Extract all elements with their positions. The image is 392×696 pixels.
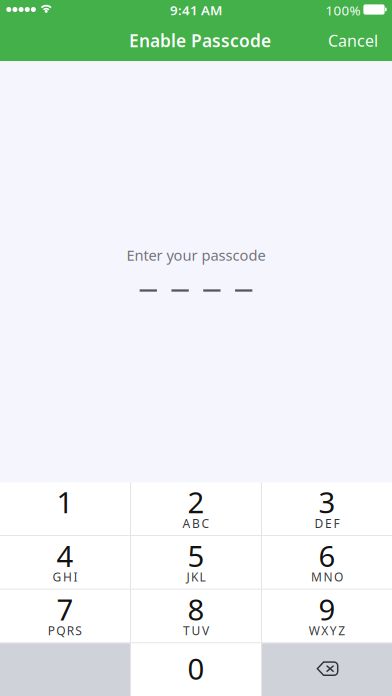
- staticText: 5: [187, 536, 204, 575]
- staticText: 100%: [326, 1, 361, 19]
- staticText: 9:41 AM: [170, 1, 222, 19]
- button[interactable]: 2: [131, 482, 261, 535]
- staticText: 0: [187, 649, 204, 688]
- button[interactable]: 5: [131, 536, 261, 589]
- staticText: 6: [318, 536, 335, 575]
- button[interactable]: 7: [0, 590, 130, 642]
- button[interactable]: 0: [131, 643, 261, 696]
- staticText: 9: [318, 590, 335, 629]
- button[interactable]: 3: [262, 482, 392, 535]
- staticText: Cancel: [328, 30, 378, 51]
- button[interactable]: 6: [262, 536, 392, 589]
- button[interactable]: Cancel: [310, 22, 392, 61]
- staticText: PQRS: [48, 623, 82, 638]
- staticText: TUV: [183, 623, 209, 638]
- staticText: Enter your passcode: [126, 245, 265, 265]
- staticText: JKL: [186, 569, 205, 585]
- staticText: Enable Passcode: [129, 29, 271, 52]
- staticText: 1: [56, 482, 73, 521]
- staticText: 4: [56, 536, 73, 575]
- staticText: 8: [187, 590, 204, 629]
- staticText: 2: [187, 482, 204, 521]
- button[interactable]: 8: [131, 590, 261, 642]
- button[interactable]: Delete: [262, 643, 392, 696]
- staticText: DEF: [314, 515, 339, 531]
- button[interactable]: 9: [262, 590, 392, 642]
- staticText: 7: [56, 590, 73, 629]
- staticText: 3: [318, 482, 335, 521]
- button[interactable]: 1: [0, 482, 130, 535]
- staticText: GHI: [52, 569, 77, 585]
- staticText: ABC: [182, 515, 209, 531]
- button[interactable]: 4: [0, 536, 130, 589]
- staticText: MNO: [311, 569, 343, 585]
- staticText: WXYZ: [309, 623, 345, 638]
